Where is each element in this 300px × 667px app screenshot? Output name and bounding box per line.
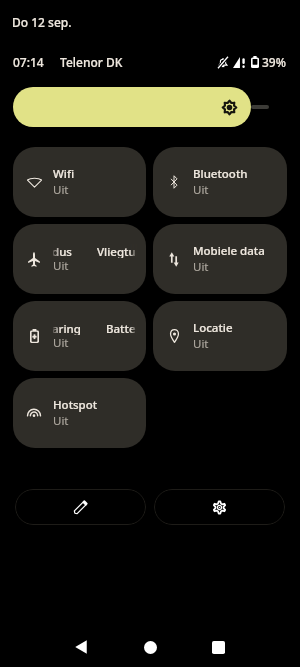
button[interactable]: dus xyxy=(13,224,146,294)
staticText: Uit xyxy=(53,182,69,198)
staticText: Vliegtuigmodus xyxy=(97,244,136,258)
staticText: 39% xyxy=(262,54,286,70)
staticText: Uit xyxy=(193,259,209,275)
button[interactable]: Hotspot xyxy=(13,378,146,448)
staticText: 07:14 xyxy=(13,54,44,70)
button[interactable]: Edit xyxy=(15,489,146,525)
button[interactable]: Back xyxy=(61,627,101,667)
button[interactable]: Brightness xyxy=(13,87,251,127)
staticText: Uit xyxy=(193,336,209,352)
button[interactable]: Home xyxy=(130,627,170,667)
staticText: Wifi xyxy=(53,166,75,182)
button[interactable]: Recents xyxy=(198,627,238,667)
button[interactable]: Locatie xyxy=(153,301,287,371)
staticText: Uit xyxy=(53,413,69,429)
button[interactable]: Mobiele data xyxy=(153,224,287,294)
staticText: Hotspot xyxy=(53,397,98,413)
staticText: Battery sharing xyxy=(106,321,136,335)
staticText: Uit xyxy=(193,182,209,198)
staticText: Do 12 sep. xyxy=(12,14,72,30)
staticText: Locatie xyxy=(193,320,233,336)
button[interactable]: aring xyxy=(13,301,146,371)
staticText: Bluetooth xyxy=(193,166,248,182)
staticText: Telenor DK xyxy=(60,54,123,70)
button[interactable]: Wifi xyxy=(13,147,146,217)
button[interactable]: Settings xyxy=(154,489,285,525)
button[interactable]: Bluetooth xyxy=(153,147,287,217)
staticText: dus xyxy=(53,244,72,258)
staticText: Uit xyxy=(53,335,69,351)
staticText: Mobiele data xyxy=(193,243,265,259)
staticText: Uit xyxy=(53,258,69,274)
staticText: aring xyxy=(53,321,81,335)
